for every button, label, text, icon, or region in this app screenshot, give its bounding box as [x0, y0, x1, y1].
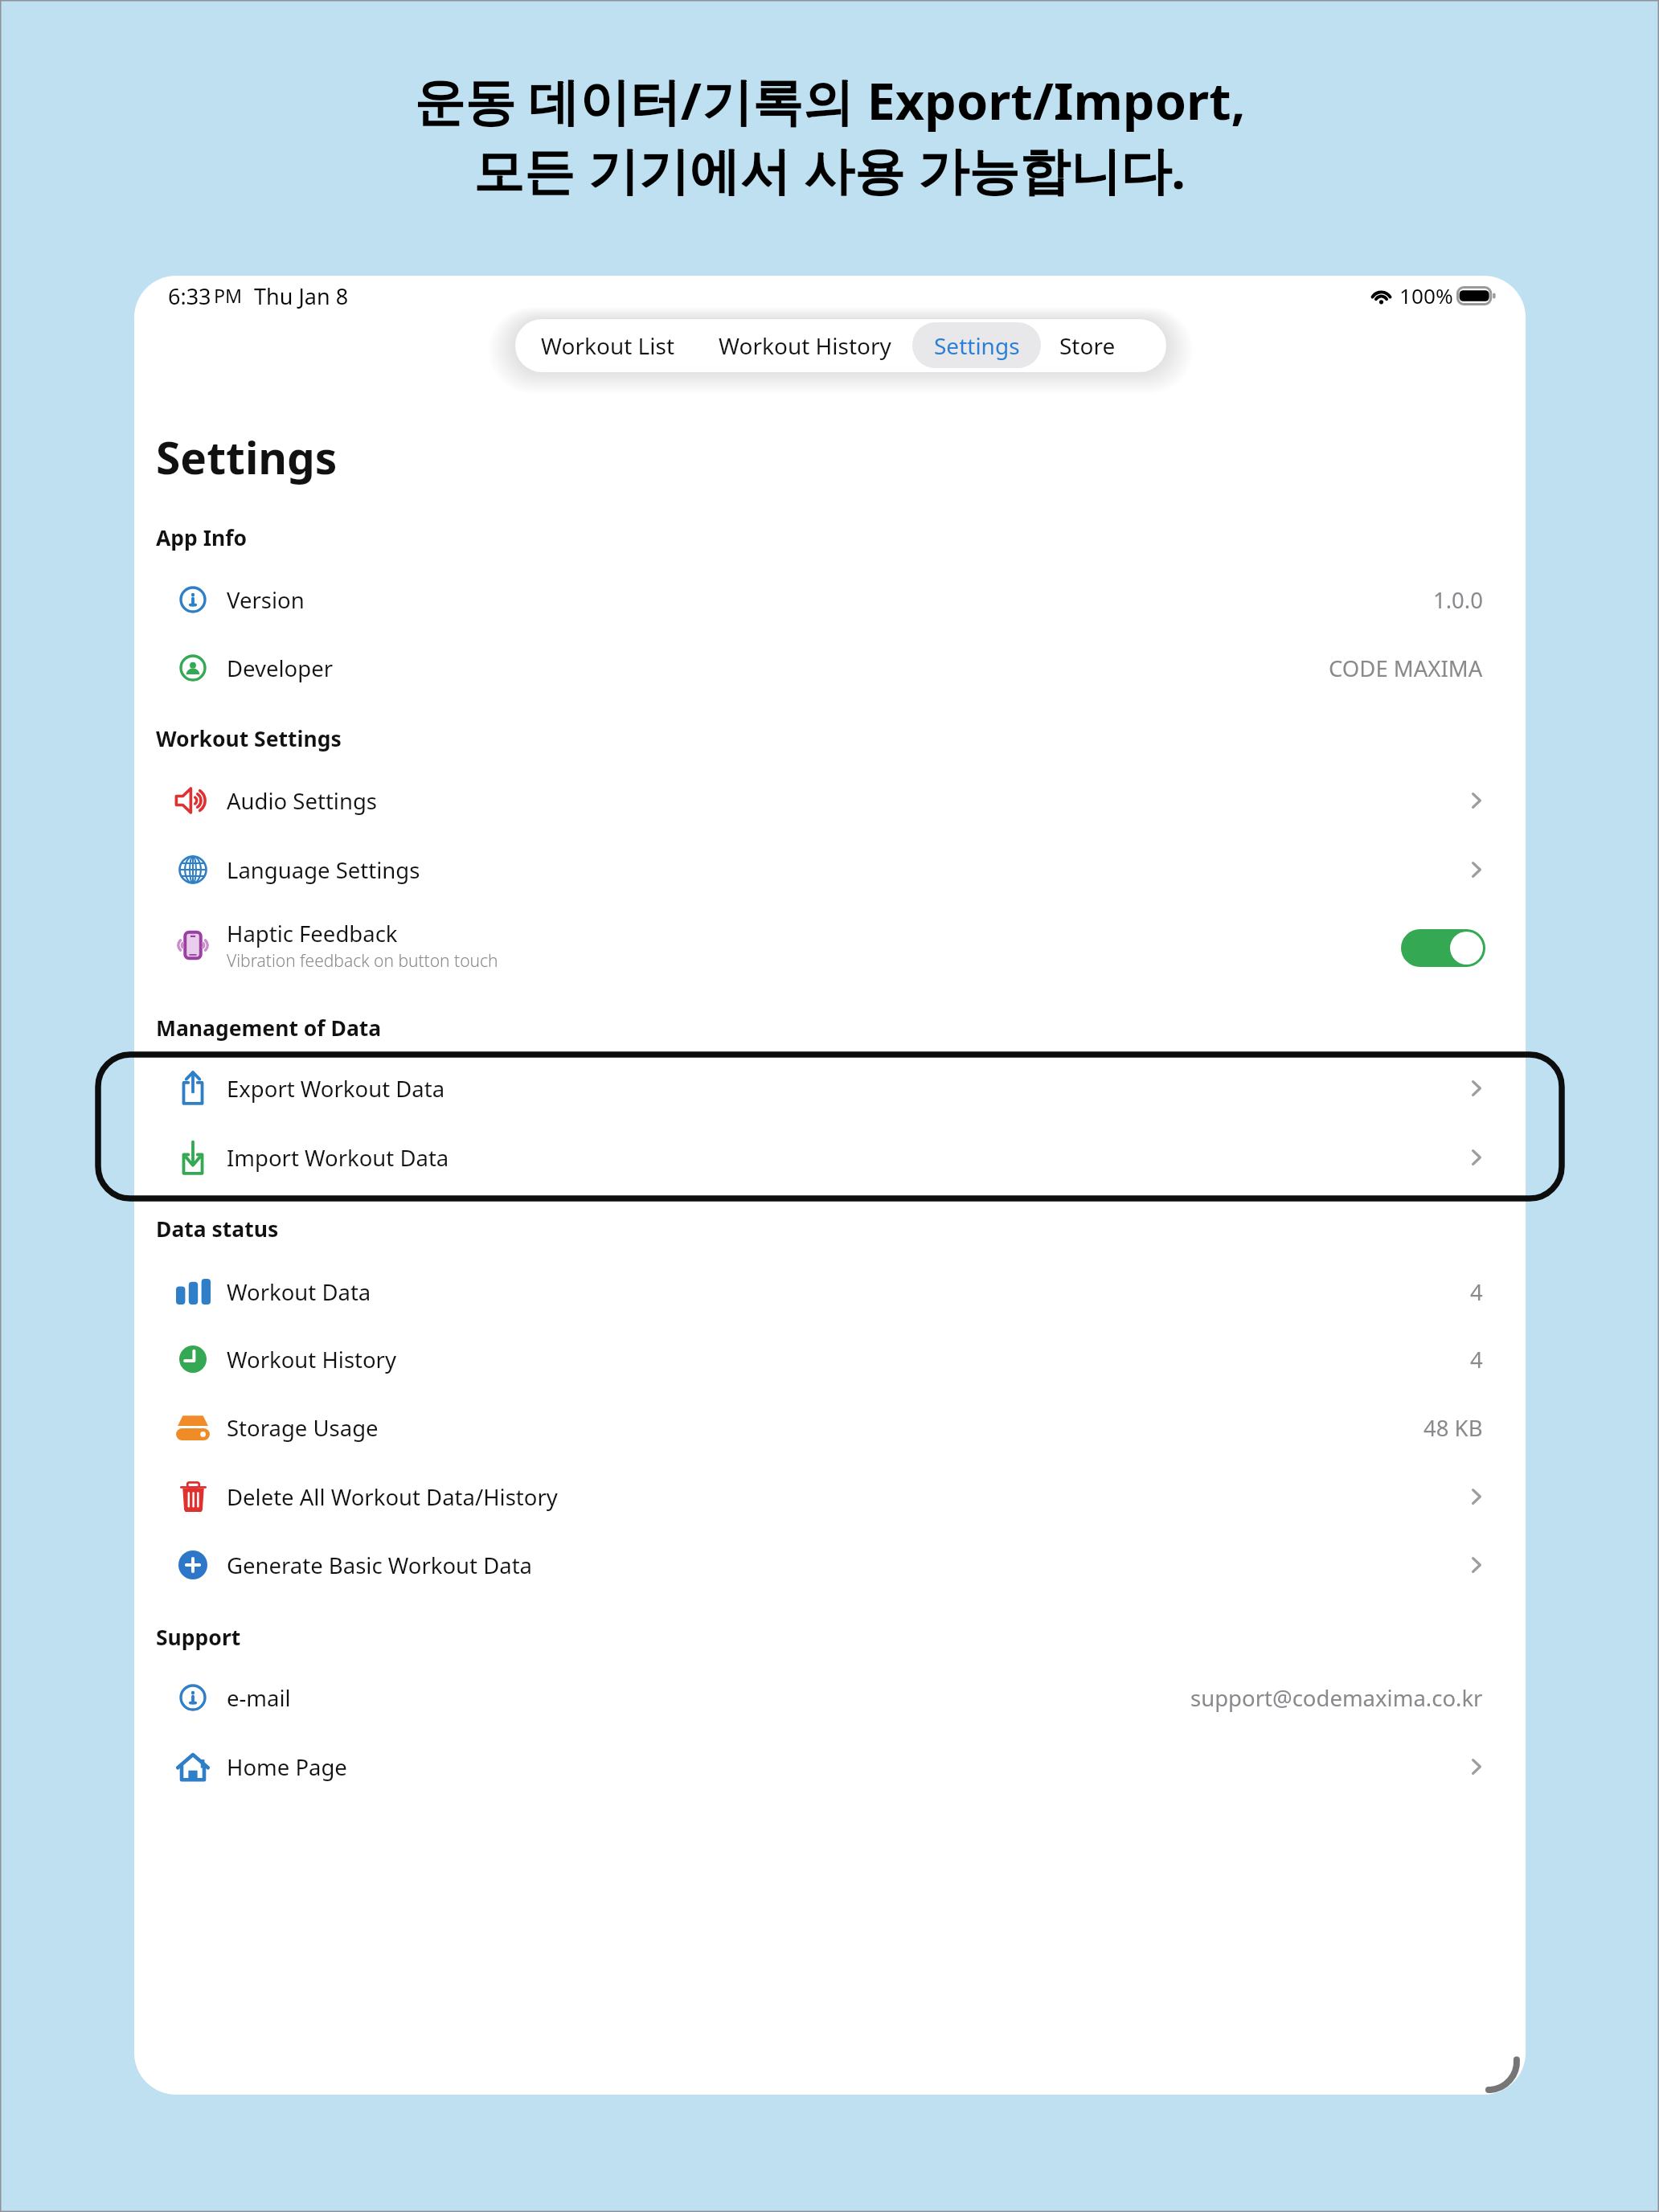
- staticText: Data status: [156, 1215, 279, 1243]
- staticText: Home Page: [227, 1752, 347, 1782]
- button[interactable]: Workout History: [709, 322, 901, 368]
- staticText: PM: [214, 283, 243, 309]
- staticText: Workout Data: [227, 1277, 371, 1307]
- staticText: 모든 기기에서 사용 가능합니다.: [473, 135, 1186, 204]
- staticText: Audio Settings: [227, 786, 377, 816]
- staticText: 운동 데이터/기록의 Export/Import,: [414, 66, 1246, 135]
- button[interactable]: e-mail: [134, 1663, 1526, 1732]
- button[interactable]: Workout List: [531, 322, 684, 368]
- button[interactable]: Language Settings: [134, 835, 1526, 904]
- staticText: Delete All Workout Data/History: [227, 1482, 558, 1512]
- staticText: Workout History: [719, 330, 891, 361]
- staticText: Generate Basic Workout Data: [227, 1550, 533, 1580]
- staticText: Support: [156, 1623, 241, 1652]
- staticText: Settings: [934, 330, 1020, 361]
- staticText: 4: [1470, 1345, 1483, 1374]
- staticText: Language Settings: [227, 855, 420, 885]
- button[interactable]: Haptic feedback toggle: [1401, 929, 1485, 967]
- button[interactable]: Workout History: [134, 1325, 1526, 1394]
- staticText: Workout History: [227, 1345, 397, 1374]
- staticText: Settings: [156, 427, 338, 487]
- button[interactable]: Store: [1050, 322, 1125, 368]
- staticText: support@codemaxima.co.kr: [1190, 1683, 1483, 1713]
- staticText: Workout List: [541, 330, 674, 361]
- staticText: 4: [1470, 1277, 1483, 1307]
- staticText: 1.0.0: [1433, 585, 1483, 615]
- button[interactable]: Delete All Workout Data/History: [134, 1462, 1526, 1531]
- staticText: 48 KB: [1423, 1413, 1483, 1443]
- staticText: Storage Usage: [227, 1413, 379, 1443]
- button[interactable]: Audio Settings: [134, 766, 1526, 835]
- button[interactable]: Developer: [134, 633, 1526, 703]
- staticText: Vibration feedback on button touch: [227, 949, 498, 973]
- button[interactable]: Home Page: [134, 1732, 1526, 1801]
- staticText: Import Workout Data: [227, 1143, 449, 1173]
- button[interactable]: Version: [134, 565, 1526, 634]
- staticText: Export Workout Data: [227, 1074, 445, 1104]
- button[interactable]: Import Workout Data: [134, 1123, 1526, 1192]
- button[interactable]: Export Workout Data: [134, 1054, 1526, 1123]
- staticText: Workout Settings: [156, 724, 342, 753]
- button[interactable]: Workout Data: [134, 1257, 1526, 1326]
- staticText: e-mail: [227, 1683, 291, 1713]
- staticText: Version: [227, 585, 305, 615]
- staticText: App Info: [156, 523, 248, 552]
- staticText: Developer: [227, 653, 334, 683]
- staticText: Thu Jan 8: [254, 281, 349, 311]
- staticText: Management of Data: [156, 1014, 382, 1043]
- staticText: 100%: [1399, 281, 1453, 310]
- staticText: CODE MAXIMA: [1329, 653, 1483, 683]
- staticText: Haptic Feedback: [227, 919, 398, 948]
- button[interactable]: Storage Usage: [134, 1393, 1526, 1462]
- button[interactable]: Settings: [912, 322, 1041, 368]
- button[interactable]: Haptic Feedback: [134, 911, 1526, 980]
- button[interactable]: Generate Basic Workout Data: [134, 1530, 1526, 1600]
- staticText: Store: [1059, 330, 1116, 361]
- staticText: 6:33: [168, 281, 211, 311]
